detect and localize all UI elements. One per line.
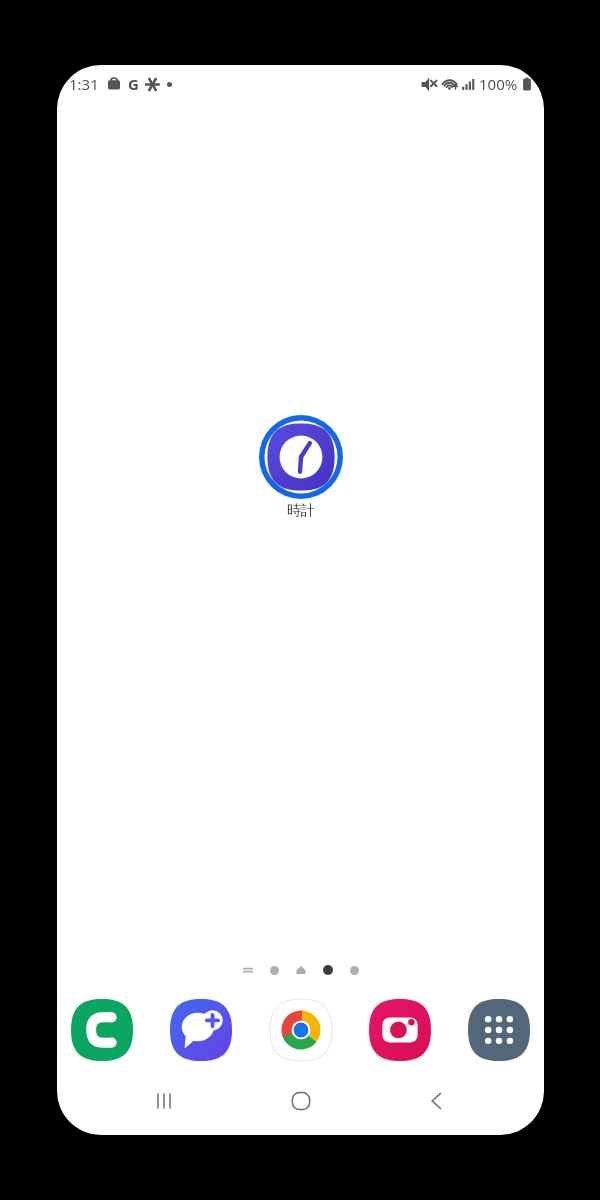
- staticText: 時計: [287, 502, 315, 520]
- staticText: G: [128, 74, 139, 94]
- button[interactable]: Apps: [468, 999, 530, 1061]
- button[interactable]: Chrome: [270, 999, 332, 1061]
- staticText: 100%: [479, 74, 518, 94]
- button[interactable]: Messages: [170, 999, 232, 1061]
- button[interactable]: Recents: [134, 1073, 194, 1129]
- button[interactable]: Back: [407, 1073, 467, 1129]
- button[interactable]: Phone: [71, 999, 133, 1061]
- button[interactable]: Home: [271, 1073, 331, 1129]
- button[interactable]: Camera: [369, 999, 431, 1061]
- button[interactable]: 時計: [259, 415, 343, 499]
- staticText: 1:31: [69, 74, 99, 94]
